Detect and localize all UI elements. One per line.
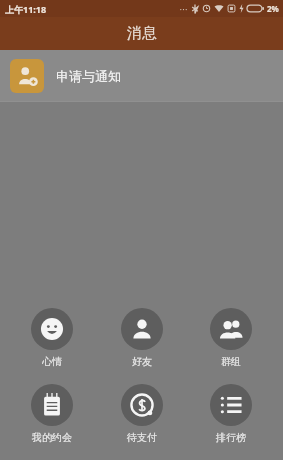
- staticText: 我的约会: [32, 431, 72, 444]
- button[interactable]: 待支付: [104, 382, 180, 446]
- other: 排行榜: [210, 384, 252, 426]
- other: 待支付: [121, 384, 163, 426]
- staticText: 上午11:18: [5, 3, 47, 15]
- other: 群组: [210, 308, 252, 350]
- staticText: 申请与通知: [56, 68, 121, 84]
- staticText: 好友: [132, 355, 152, 368]
- other: 我的约会: [31, 384, 73, 426]
- staticText: 2%: [267, 3, 279, 14]
- button[interactable]: 排行榜: [193, 382, 269, 446]
- staticText: 排行榜: [216, 431, 246, 444]
- staticText: 心情: [42, 355, 62, 368]
- other: 好友: [121, 308, 163, 350]
- button[interactable]: 申请与通知: [0, 50, 283, 101]
- button[interactable]: 群组: [193, 306, 269, 370]
- staticText: 待支付: [127, 431, 157, 444]
- other: 心情: [31, 308, 73, 350]
- button[interactable]: 心情: [14, 306, 90, 370]
- button[interactable]: 好友: [104, 306, 180, 370]
- staticText: 群组: [221, 355, 241, 368]
- staticText: 消息: [127, 24, 157, 43]
- button[interactable]: 我的约会: [14, 382, 90, 446]
